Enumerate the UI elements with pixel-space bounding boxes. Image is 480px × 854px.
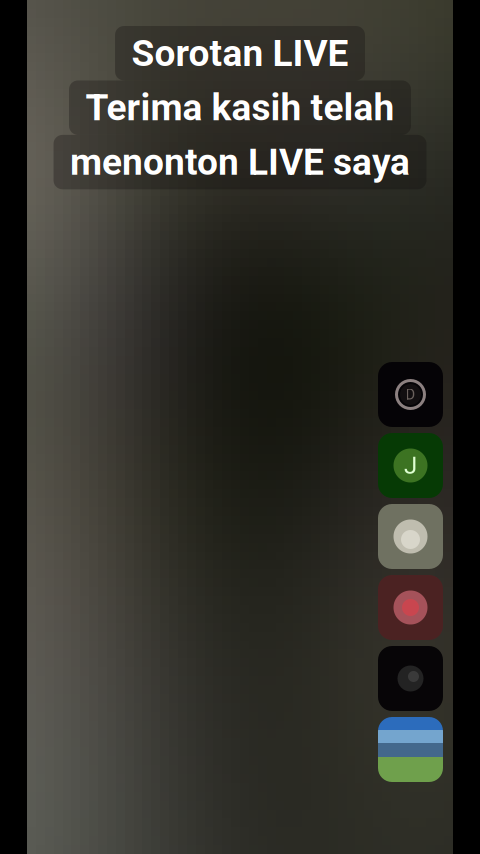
staticText: Terima kasih telah: [85, 86, 394, 129]
button[interactable]: Profile J highlight: [378, 433, 443, 498]
button[interactable]: Dog highlight: [378, 504, 443, 569]
staticText: menonton LIVE saya: [70, 140, 410, 184]
staticText: Sorotan LIVE: [131, 31, 348, 75]
button[interactable]: Team photo highlight: [378, 575, 443, 640]
button[interactable]: Stadium highlight: [378, 717, 443, 782]
button[interactable]: Night shot highlight: [378, 646, 443, 711]
button[interactable]: Crest highlight: [378, 362, 443, 427]
staticText: J: [404, 451, 417, 479]
staticText: D: [405, 386, 415, 403]
